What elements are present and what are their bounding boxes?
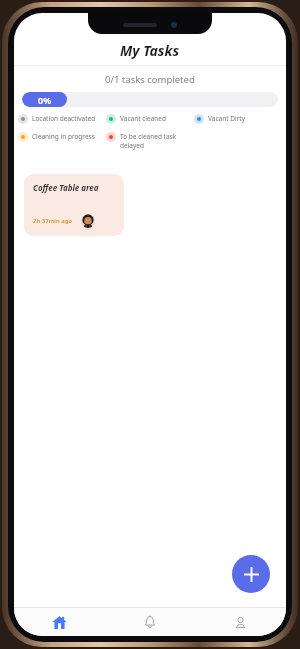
staticText: 2h 37min ago bbox=[33, 217, 73, 225]
button[interactable]: Home bbox=[14, 608, 104, 636]
staticText: 0/1 tasks completed bbox=[105, 73, 195, 86]
button[interactable]: Location deactivated bbox=[18, 114, 106, 124]
staticText: Location deactivated bbox=[32, 114, 96, 123]
button[interactable]: Coffee Table area bbox=[24, 174, 124, 236]
staticText: Vacant cleaned bbox=[120, 114, 167, 123]
button[interactable]: To be cleaned task delayed bbox=[106, 132, 194, 150]
button[interactable]: Profile bbox=[195, 608, 286, 636]
button[interactable]: Vacant cleaned bbox=[106, 114, 194, 124]
button[interactable]: 0% bbox=[22, 92, 278, 107]
button[interactable]: Vacant Dirty bbox=[194, 114, 282, 124]
staticText: To be cleaned task delayed bbox=[120, 132, 194, 150]
button[interactable]: Add task bbox=[232, 555, 270, 593]
button[interactable]: Notifications bbox=[104, 608, 195, 636]
staticText: Cleaning in progress bbox=[32, 132, 95, 141]
staticText: Vacant Dirty bbox=[208, 114, 246, 123]
staticText: My Tasks bbox=[120, 41, 180, 60]
staticText: 0% bbox=[38, 94, 52, 106]
staticText: Coffee Table area bbox=[33, 182, 99, 193]
button[interactable]: Cleaning in progress bbox=[18, 132, 106, 142]
